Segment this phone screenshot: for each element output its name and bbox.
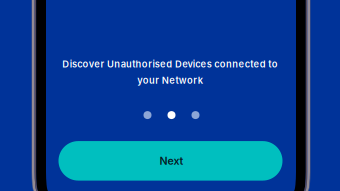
staticText: Next bbox=[159, 154, 183, 167]
button[interactable]: Next bbox=[58, 141, 282, 181]
staticText: your Network bbox=[137, 75, 203, 86]
staticText: Discover Unauthorised Devices connected … bbox=[62, 58, 278, 70]
